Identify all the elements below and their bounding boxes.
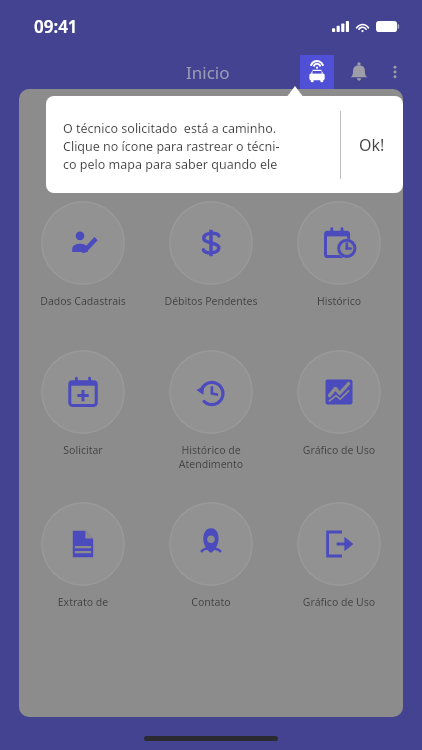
button[interactable]: Dados Cadastrais	[19, 201, 147, 308]
button[interactable]: Ok!	[341, 96, 403, 193]
staticText: Inicio	[186, 61, 230, 84]
staticText: Ok!	[359, 134, 385, 156]
button[interactable]: Gráfico de Uso	[275, 502, 403, 609]
button[interactable]: Rastrear técnico	[300, 55, 334, 89]
staticText: Dados Cadastrais	[21, 294, 145, 308]
staticText: Gráfico de Uso	[277, 595, 401, 609]
staticText: Débitos Pendentes	[149, 294, 273, 308]
staticText: Contato	[149, 595, 273, 609]
button[interactable]: Histórico de Atendimento	[147, 350, 275, 471]
button[interactable]: Solicitar	[19, 350, 147, 457]
staticText: Histórico de Atendimento	[149, 443, 273, 471]
button[interactable]: Gráfico de Uso	[275, 350, 403, 457]
button[interactable]: Extrato de	[19, 502, 147, 609]
button[interactable]: Notificações	[342, 55, 376, 89]
staticText: Solicitar	[21, 443, 145, 457]
staticText: O técnico solicitado está a caminho. Cli…	[63, 120, 340, 173]
staticText: Gráfico de Uso	[277, 443, 401, 457]
button[interactable]: Débitos Pendentes	[147, 201, 275, 308]
button[interactable]: Histórico	[275, 201, 403, 308]
staticText: Histórico	[277, 294, 401, 308]
staticText: 09:41	[34, 15, 78, 38]
button[interactable]: Contato	[147, 502, 275, 609]
button[interactable]: Mais opções	[380, 57, 410, 87]
staticText: Extrato de	[21, 595, 145, 609]
